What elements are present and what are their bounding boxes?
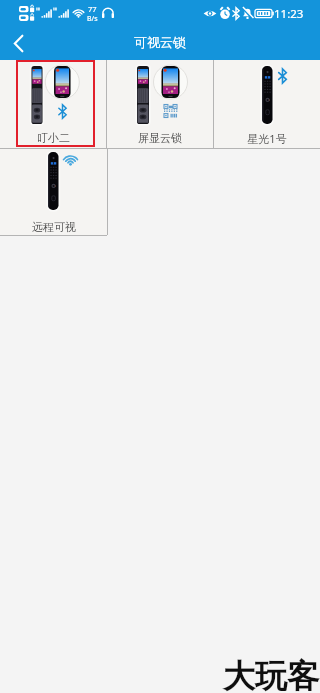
button[interactable]: Back bbox=[0, 27, 36, 60]
staticText: 叮小二 bbox=[37, 131, 70, 145]
button[interactable]: 屏显云锁 bbox=[107, 60, 213, 148]
button[interactable]: 叮小二 bbox=[0, 60, 106, 148]
staticText: 大玩客 bbox=[223, 656, 319, 693]
staticText: 可视云锁 bbox=[134, 34, 186, 50]
button[interactable]: 星光1号 bbox=[214, 60, 320, 148]
staticText: 77 bbox=[88, 4, 97, 14]
staticText: 11:23 bbox=[274, 6, 304, 22]
button[interactable]: 远程可视 bbox=[0, 149, 107, 235]
staticText: 星光1号 bbox=[247, 131, 287, 146]
staticText: 远程可视 bbox=[32, 220, 76, 234]
staticText: B/s bbox=[87, 14, 98, 24]
staticText: 屏显云锁 bbox=[138, 131, 182, 145]
